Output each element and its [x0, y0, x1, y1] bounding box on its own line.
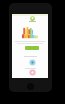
- button[interactable]: Verified badge: [29, 59, 36, 66]
- button[interactable]: Favourite badge: [29, 69, 36, 76]
- button[interactable]: [25, 46, 39, 50]
